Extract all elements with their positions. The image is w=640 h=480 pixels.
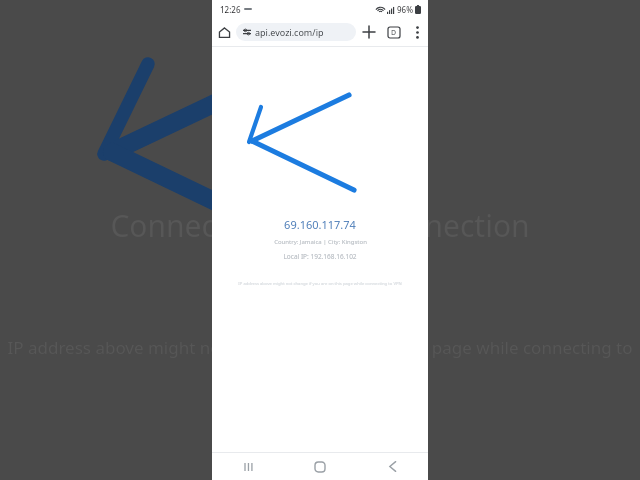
staticText: Country: Jamaica | City: Kingston — [274, 238, 367, 246]
staticText: 12:26 — [220, 4, 241, 15]
button[interactable]: Recent apps — [212, 453, 284, 480]
button[interactable]: Tabs — [382, 18, 406, 46]
button[interactable]: api.evozi.com/ip — [236, 23, 356, 41]
staticText: Local IP: 192.168.16.102 — [283, 252, 357, 261]
button[interactable]: Home — [284, 453, 356, 480]
button[interactable]: Home — [212, 18, 236, 46]
staticText: api.evozi.com/ip — [255, 26, 324, 38]
staticText: 69.160.117.74 — [284, 217, 356, 232]
staticText: D — [391, 28, 397, 38]
staticText: 96% — [397, 4, 413, 15]
button[interactable]: More options — [406, 18, 428, 46]
staticText: IP address above might not change if you… — [238, 281, 402, 287]
button[interactable]: Back — [356, 453, 428, 480]
staticText: IP address above might not change if you… — [0, 336, 640, 359]
staticText: Connected to VPN connection — [110, 205, 530, 246]
button[interactable]: New tab — [356, 18, 382, 46]
